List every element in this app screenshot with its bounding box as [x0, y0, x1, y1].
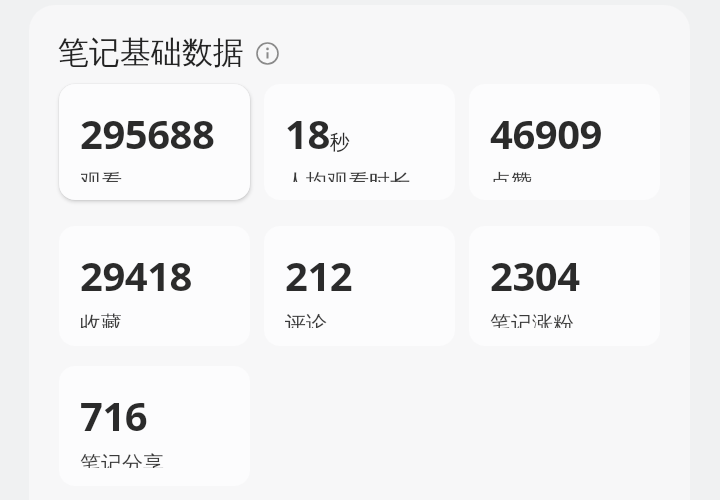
staticText: 46909 [490, 106, 602, 160]
staticText: 笔记涨粉 [490, 311, 574, 328]
button[interactable]: 2304 [469, 226, 660, 346]
staticText: 29418 [80, 248, 192, 302]
button[interactable]: 716 [59, 366, 250, 486]
staticText: 评论 [285, 311, 327, 328]
staticText: 18秒 [285, 106, 350, 160]
staticText: 笔记基础数据 [58, 33, 244, 72]
button[interactable]: 18秒 [264, 84, 455, 200]
button[interactable]: 29418 [59, 226, 250, 346]
staticText: 716 [80, 388, 148, 442]
staticText: 观看 [80, 169, 122, 182]
staticText: 212 [285, 248, 353, 302]
staticText: 人均观看时长 [285, 169, 411, 182]
staticText: 点赞 [490, 169, 532, 182]
staticText: 295688 [80, 106, 215, 160]
staticText: 收藏 [80, 311, 122, 328]
staticText: 2304 [490, 248, 580, 302]
button[interactable]: 笔记基础数据 [58, 33, 279, 72]
button[interactable]: 212 [264, 226, 455, 346]
button[interactable]: 295688 [59, 84, 250, 200]
button[interactable]: 说明 [255, 41, 279, 65]
staticText: 笔记分享 [80, 451, 164, 468]
button[interactable]: 46909 [469, 84, 660, 200]
